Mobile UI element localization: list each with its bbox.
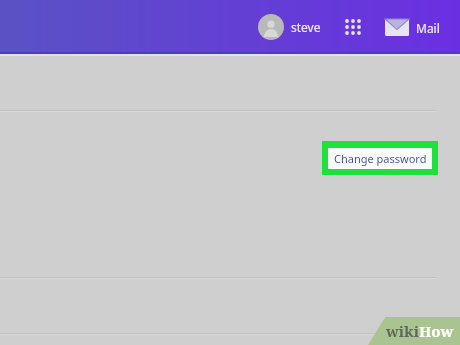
button[interactable]: Change password <box>322 141 438 175</box>
button[interactable]: steve <box>256 12 323 42</box>
button[interactable]: Mail <box>383 17 442 38</box>
staticText: Change password <box>334 151 427 166</box>
staticText: steve <box>291 19 321 35</box>
staticText: How <box>419 321 454 341</box>
staticText: Mail <box>416 20 440 36</box>
button[interactable]: Google apps <box>341 15 365 39</box>
staticText: wiki <box>386 321 419 341</box>
